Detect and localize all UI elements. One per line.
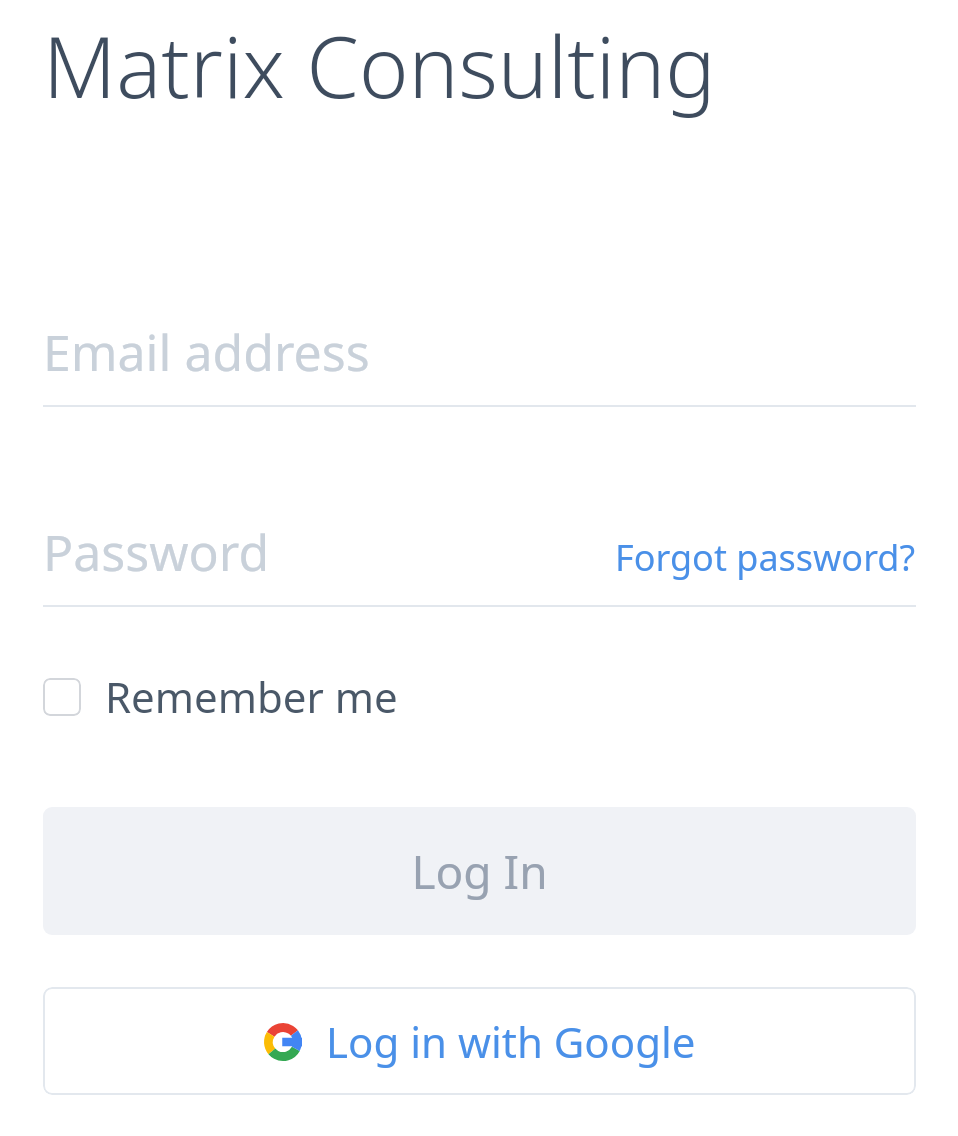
staticText: Remember me	[105, 668, 398, 725]
button[interactable]: Forgot password?	[615, 533, 916, 586]
staticText: Forgot password?	[615, 533, 916, 582]
button[interactable]: Log In	[43, 807, 916, 935]
button[interactable]: Email address	[43, 318, 916, 407]
button[interactable]: Password	[43, 518, 615, 586]
staticText: Matrix Consulting	[43, 8, 716, 122]
staticText: Password	[43, 518, 270, 586]
staticText: Log in with Google	[326, 1013, 696, 1070]
button[interactable]: Remember me	[43, 664, 398, 729]
staticText: Email address	[43, 318, 370, 386]
staticText: Log In	[411, 840, 548, 903]
button[interactable]: Log in with Google	[43, 987, 916, 1095]
